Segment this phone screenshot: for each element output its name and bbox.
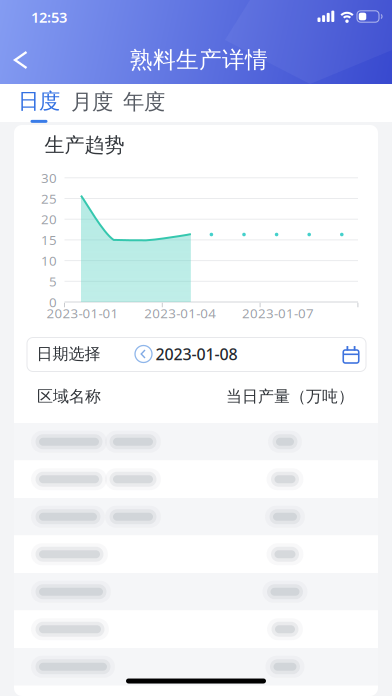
staticText: 2023-01-07 (242, 304, 314, 322)
staticText: 日度 (18, 88, 60, 114)
staticText: 12:53 (31, 7, 67, 27)
staticText: 5 (49, 272, 57, 290)
button[interactable]: Back (9, 49, 33, 71)
staticText: 月度 (71, 89, 113, 115)
staticText: 15 (41, 231, 57, 249)
staticText: 10 (41, 252, 57, 269)
staticText: 0 (49, 293, 57, 311)
staticText: 熟料生产详情 (130, 46, 268, 74)
staticText: 生产趋势 (44, 133, 124, 157)
button[interactable]: Previous day (135, 345, 152, 362)
staticText: 区域名称 (37, 387, 101, 406)
button[interactable]: 月度 (71, 89, 113, 115)
staticText: 20 (41, 210, 57, 228)
staticText: 30 (41, 169, 57, 187)
staticText: 日期选择 (36, 344, 100, 364)
staticText: 年度 (123, 89, 165, 115)
button[interactable]: 年度 (123, 89, 165, 115)
staticText: 当日产量（万吨） (226, 387, 354, 406)
staticText: 25 (41, 190, 57, 207)
staticText: 2023-01-08 (155, 343, 237, 365)
staticText: 2023-01-04 (144, 304, 216, 322)
button[interactable]: Choose date (342, 345, 360, 363)
staticText: 2023-01-01 (46, 304, 118, 322)
button[interactable]: 日度 (18, 88, 60, 123)
